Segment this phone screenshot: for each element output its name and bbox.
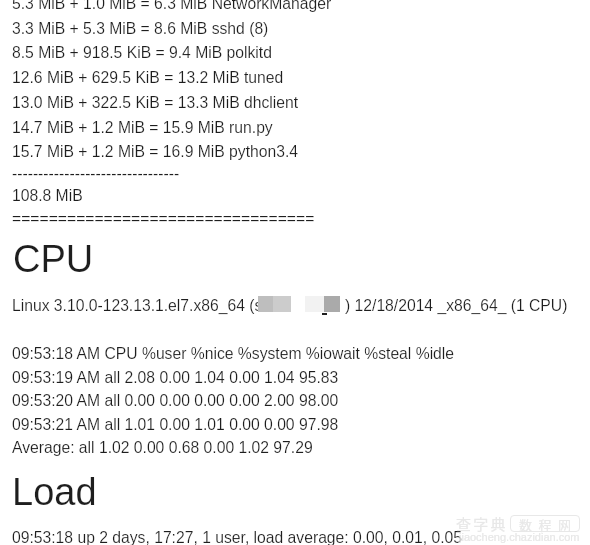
staticText: Average: all 1.02 0.00 0.68 0.00 1.02 97… (12, 439, 313, 457)
staticText: 108.8 MiB (12, 187, 83, 205)
staticText: 8.5 MiB + 918.5 KiB = 9.4 MiB polkitd (12, 44, 272, 62)
button[interactable]: jiaocheng.chazidian.com (455, 511, 583, 543)
staticText: 13.0 MiB + 322.5 KiB = 13.3 MiB dhclient (12, 94, 299, 112)
staticText: 12.6 MiB + 629.5 KiB = 13.2 MiB tuned (12, 69, 284, 87)
button[interactable]: CPU (9, 236, 93, 274)
staticText: ) 12/18/2014 _x86_64_ (1 CPU) (345, 297, 568, 315)
staticText: 09:53:19 AM all 2.08 0.00 1.04 0.00 1.04… (12, 369, 339, 387)
staticText: 5.3 MiB + 1.0 MiB = 6.3 MiB NetworkManag… (12, 0, 332, 13)
button[interactable]: Load (9, 469, 98, 507)
staticText: 09:53:21 AM all 1.01 0.00 1.01 0.00 0.00… (12, 416, 339, 434)
staticText: -------------------------------- (12, 165, 180, 183)
staticText: 09:53:18 up 2 days, 17:27, 1 user, load … (12, 529, 463, 545)
staticText: jiaocheng.chazidian.com (459, 531, 580, 543)
staticText: 15.7 MiB + 1.2 MiB = 16.9 MiB python3.4 (12, 143, 299, 161)
staticText: CPU (13, 238, 94, 276)
staticText: Linux 3.10.0-123.13.1.el7.x86_64 (s (12, 297, 263, 315)
staticText: 14.7 MiB + 1.2 MiB = 15.9 MiB run.py (12, 119, 273, 137)
staticText: 09:53:18 AM CPU %user %nice %system %iow… (12, 345, 455, 363)
staticText: 数程网 (519, 515, 578, 534)
staticText: ================================= (12, 210, 315, 228)
staticText: 3.3 MiB + 5.3 MiB = 8.6 MiB sshd (8) (12, 20, 269, 38)
staticText: 查字典 (456, 513, 508, 535)
staticText: Load (12, 471, 97, 509)
staticText: 09:53:20 AM all 0.00 0.00 0.00 0.00 2.00… (12, 392, 339, 410)
